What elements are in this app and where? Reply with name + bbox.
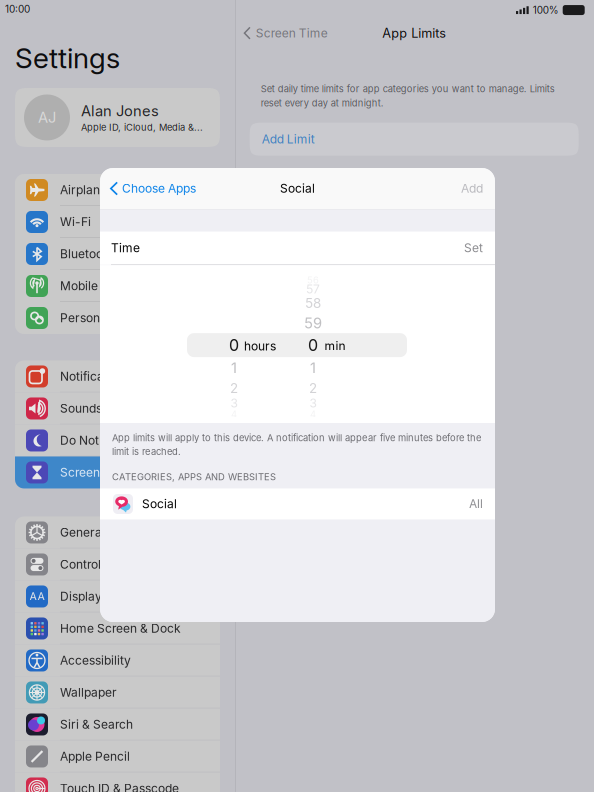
staticText: 0: [229, 335, 239, 355]
button[interactable]: Siri & Search: [15, 708, 220, 740]
button[interactable]: Accessibility: [15, 644, 220, 676]
staticText: CATEGORIES, APPS AND WEBSITES: [112, 471, 276, 482]
staticText: hours: [244, 339, 276, 353]
staticText: Control Centre: [60, 557, 142, 572]
staticText: Add: [461, 181, 483, 196]
button[interactable]: Wi-Fi: [15, 206, 220, 238]
staticText: App limits will apply to this device. A …: [112, 432, 481, 443]
button[interactable]: Control Centre: [15, 548, 220, 580]
staticText: Bluetooth: [60, 247, 114, 261]
staticText: AA: [29, 590, 44, 603]
button[interactable]: Add Limit: [250, 123, 579, 156]
staticText: reset every day at midnight.: [261, 97, 384, 109]
staticText: Choose Apps: [122, 181, 196, 196]
staticText: 100%: [533, 4, 559, 16]
button[interactable]: Airplane Mode: [15, 174, 220, 206]
button[interactable]: Screen Time: [15, 456, 220, 488]
staticText: General: [60, 525, 105, 540]
button[interactable]: AJ: [15, 88, 220, 147]
staticText: Screen Time: [256, 26, 328, 40]
button[interactable]: Add: [449, 168, 495, 209]
button[interactable]: Mobile Data: [15, 270, 220, 302]
button[interactable]: Bluetooth: [15, 238, 220, 270]
staticText: Accessibility: [60, 653, 131, 668]
staticText: 1: [231, 359, 237, 377]
staticText: Alan Jones: [81, 102, 159, 120]
staticText: Social: [142, 497, 177, 511]
staticText: Display & Brightness: [60, 589, 176, 604]
staticText: Social: [280, 181, 315, 196]
button[interactable]: Touch ID & Passcode: [15, 772, 220, 792]
staticText: Notifications: [60, 369, 131, 384]
button[interactable]: Personal Hotspot: [15, 302, 220, 334]
staticText: All: [469, 497, 483, 511]
staticText: min: [324, 339, 345, 353]
staticText: Touch ID & Passcode: [60, 781, 179, 792]
staticText: Home Screen & Dock: [60, 621, 181, 636]
staticText: 4: [310, 408, 316, 420]
staticText: Siri & Search: [60, 717, 133, 732]
staticText: 56: [307, 274, 319, 286]
staticText: Apple ID, iCloud, Media &...: [81, 122, 203, 133]
staticText: Set: [464, 241, 483, 255]
staticText: Settings: [15, 41, 120, 75]
staticText: 2: [230, 380, 238, 396]
staticText: Wi-Fi: [60, 215, 91, 229]
staticText: Airplane Mode: [60, 183, 142, 197]
button[interactable]: Home Screen & Dock: [15, 612, 220, 644]
button[interactable]: Apple Pencil: [15, 740, 220, 772]
staticText: Apple Pencil: [60, 749, 130, 764]
button[interactable]: Time: [100, 231, 495, 264]
staticText: Do Not Disturb: [60, 433, 143, 448]
staticText: Add Limit: [262, 132, 315, 146]
button[interactable]: Wallpaper: [15, 676, 220, 708]
staticText: 1: [310, 359, 316, 377]
staticText: 58: [305, 295, 321, 311]
button[interactable]: Choose Apps: [100, 168, 204, 209]
staticText: Set daily time limits for app categories…: [261, 83, 555, 94]
staticText: App Limits: [382, 25, 446, 41]
staticText: Time: [111, 241, 140, 255]
staticText: 10:00: [5, 3, 30, 15]
staticText: 57: [306, 282, 320, 296]
button[interactable]: General: [15, 516, 220, 548]
staticText: Sounds: [60, 401, 102, 416]
button[interactable]: Screen Time: [236, 18, 334, 48]
staticText: 0: [308, 335, 318, 355]
button[interactable]: AA: [15, 580, 220, 612]
button[interactable]: Social: [100, 488, 495, 519]
button[interactable]: Sounds: [15, 392, 220, 424]
staticText: Personal Hotspot: [60, 311, 157, 325]
staticText: limit is reached.: [112, 446, 181, 457]
staticText: AJ: [38, 109, 56, 126]
staticText: Wallpaper: [60, 685, 117, 700]
staticText: 59: [304, 314, 322, 332]
button[interactable]: Do Not Disturb: [15, 424, 220, 456]
staticText: 3: [230, 396, 237, 410]
staticText: Screen Time: [60, 465, 132, 480]
staticText: 3: [309, 396, 316, 410]
staticText: 2: [309, 380, 317, 396]
staticText: 4: [231, 408, 237, 420]
staticText: Mobile Data: [60, 279, 128, 293]
button[interactable]: Notifications: [15, 360, 220, 392]
